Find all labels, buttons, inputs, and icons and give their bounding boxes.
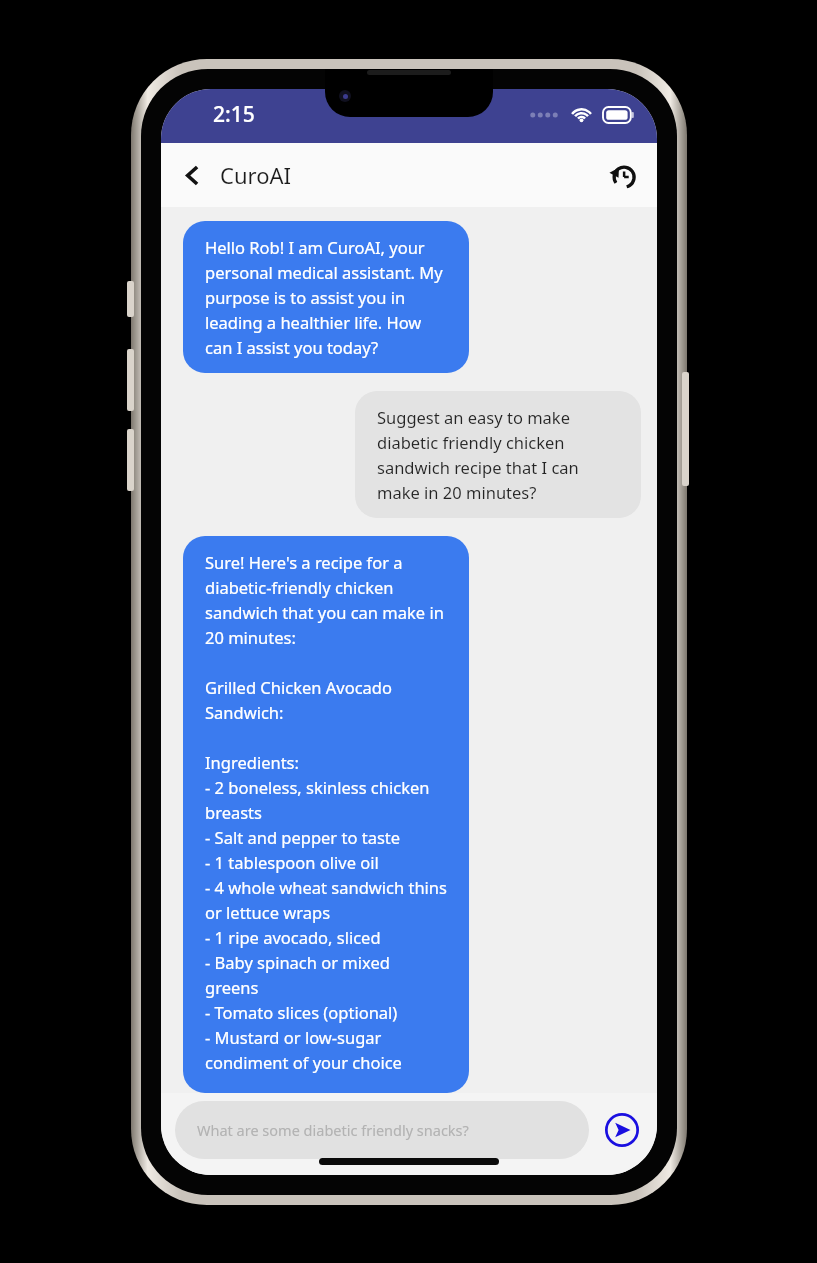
staticText: CuroAI xyxy=(220,160,291,190)
button[interactable]: Back xyxy=(170,153,214,197)
staticText: What are some diabetic friendly snacks? xyxy=(197,1120,469,1140)
button[interactable]: Send xyxy=(599,1107,645,1153)
button[interactable]: What are some diabetic friendly snacks? xyxy=(175,1101,589,1159)
staticText: 2:15 xyxy=(213,100,255,129)
button[interactable]: Hello Rob! I am CuroAI, your personal me… xyxy=(183,221,469,373)
button[interactable]: Suggest an easy to make diabetic friendl… xyxy=(355,391,641,518)
staticText: Hello Rob! I am CuroAI, your personal me… xyxy=(205,236,447,358)
button[interactable]: Sure! Here's a recipe for a diabetic-fri… xyxy=(183,536,469,1093)
button[interactable]: History xyxy=(599,152,645,198)
staticText: Sure! Here's a recipe for a diabetic-fri… xyxy=(205,551,447,1078)
staticText: Suggest an easy to make diabetic friendl… xyxy=(377,406,619,503)
